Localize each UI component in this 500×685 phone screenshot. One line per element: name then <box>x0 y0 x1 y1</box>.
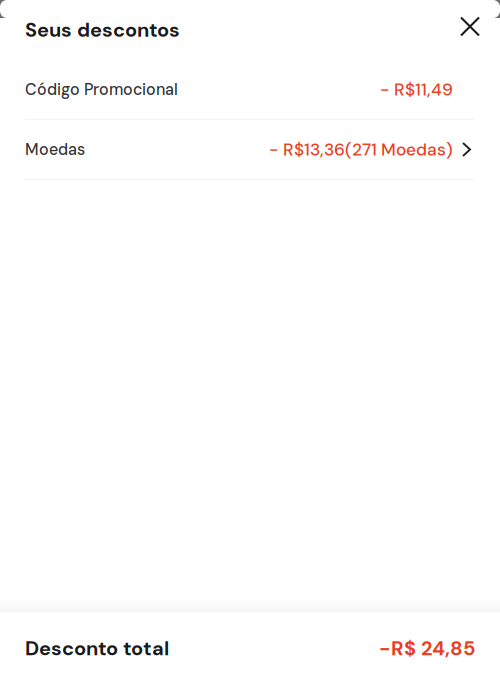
button[interactable]: Código Promocional <box>0 60 500 120</box>
staticText: - R$11,49 <box>380 78 453 101</box>
staticText: Código Promocional <box>25 79 178 100</box>
staticText: - R$13,36(271 Moedas) <box>269 138 453 161</box>
staticText: Desconto total <box>25 635 169 661</box>
button[interactable]: Moedas <box>0 120 500 180</box>
staticText: -R$ 24,85 <box>379 635 475 661</box>
button[interactable]: Fechar <box>448 4 492 48</box>
staticText: Moedas <box>25 139 85 160</box>
staticText: Seus descontos <box>25 17 180 43</box>
